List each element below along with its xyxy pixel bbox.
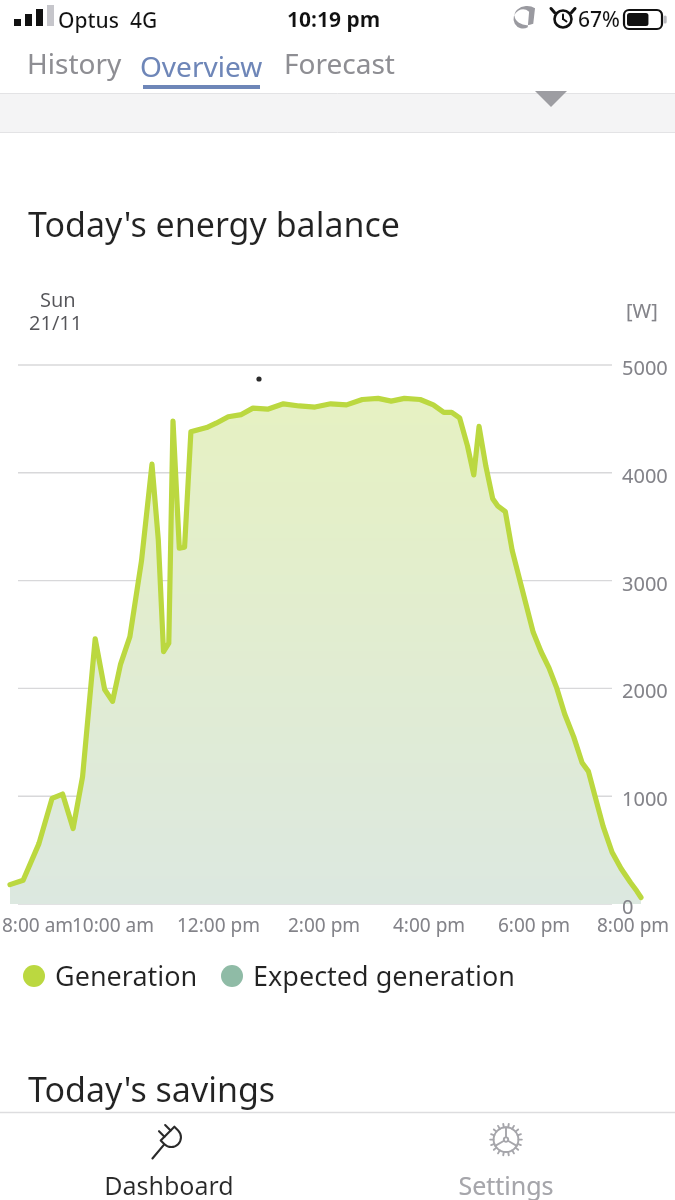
staticText: 1000 [622, 785, 668, 812]
staticText: Sun [40, 286, 76, 313]
button[interactable]: Forecast [278, 38, 400, 88]
staticText: 8:00 am [2, 912, 74, 938]
staticText: 6:00 pm [498, 912, 571, 938]
staticText: 10:00 am [72, 912, 154, 938]
staticText: 0 [622, 893, 634, 920]
staticText: 5000 [622, 354, 668, 381]
staticText: 4000 [622, 462, 668, 489]
staticText: 3000 [622, 570, 668, 597]
staticText: 10:19 pm [287, 5, 381, 34]
staticText: Forecast [284, 44, 395, 82]
staticText: 21/11 [29, 309, 83, 336]
button[interactable]: Expand panel [0, 93, 675, 133]
button[interactable]: Settings [337, 1112, 675, 1200]
staticText: Generation [55, 957, 198, 994]
button[interactable]: History [18, 38, 130, 88]
staticText: 4G [130, 6, 158, 35]
staticText: Today's savings [28, 1066, 276, 1112]
staticText: 12:00 pm [177, 912, 260, 938]
button[interactable]: Overview [133, 38, 269, 94]
staticText: Expected generation [253, 957, 515, 994]
staticText: 8:00 pm [597, 912, 670, 938]
staticText: 2000 [622, 677, 668, 704]
button[interactable]: Dashboard [0, 1112, 337, 1200]
staticText: Optus [58, 6, 119, 35]
staticText: 4:00 pm [393, 912, 466, 938]
staticText: Overview [140, 47, 263, 85]
staticText: 2:00 pm [288, 912, 361, 938]
button[interactable]: Expected generation [220, 957, 515, 994]
button[interactable]: Generation [22, 957, 198, 994]
staticText: Today's energy balance [28, 201, 401, 247]
staticText: History [27, 44, 122, 82]
staticText: 67% [578, 5, 620, 34]
staticText: Settings [458, 1168, 554, 1200]
staticText: [W] [626, 297, 658, 324]
staticText: Dashboard [104, 1168, 234, 1200]
